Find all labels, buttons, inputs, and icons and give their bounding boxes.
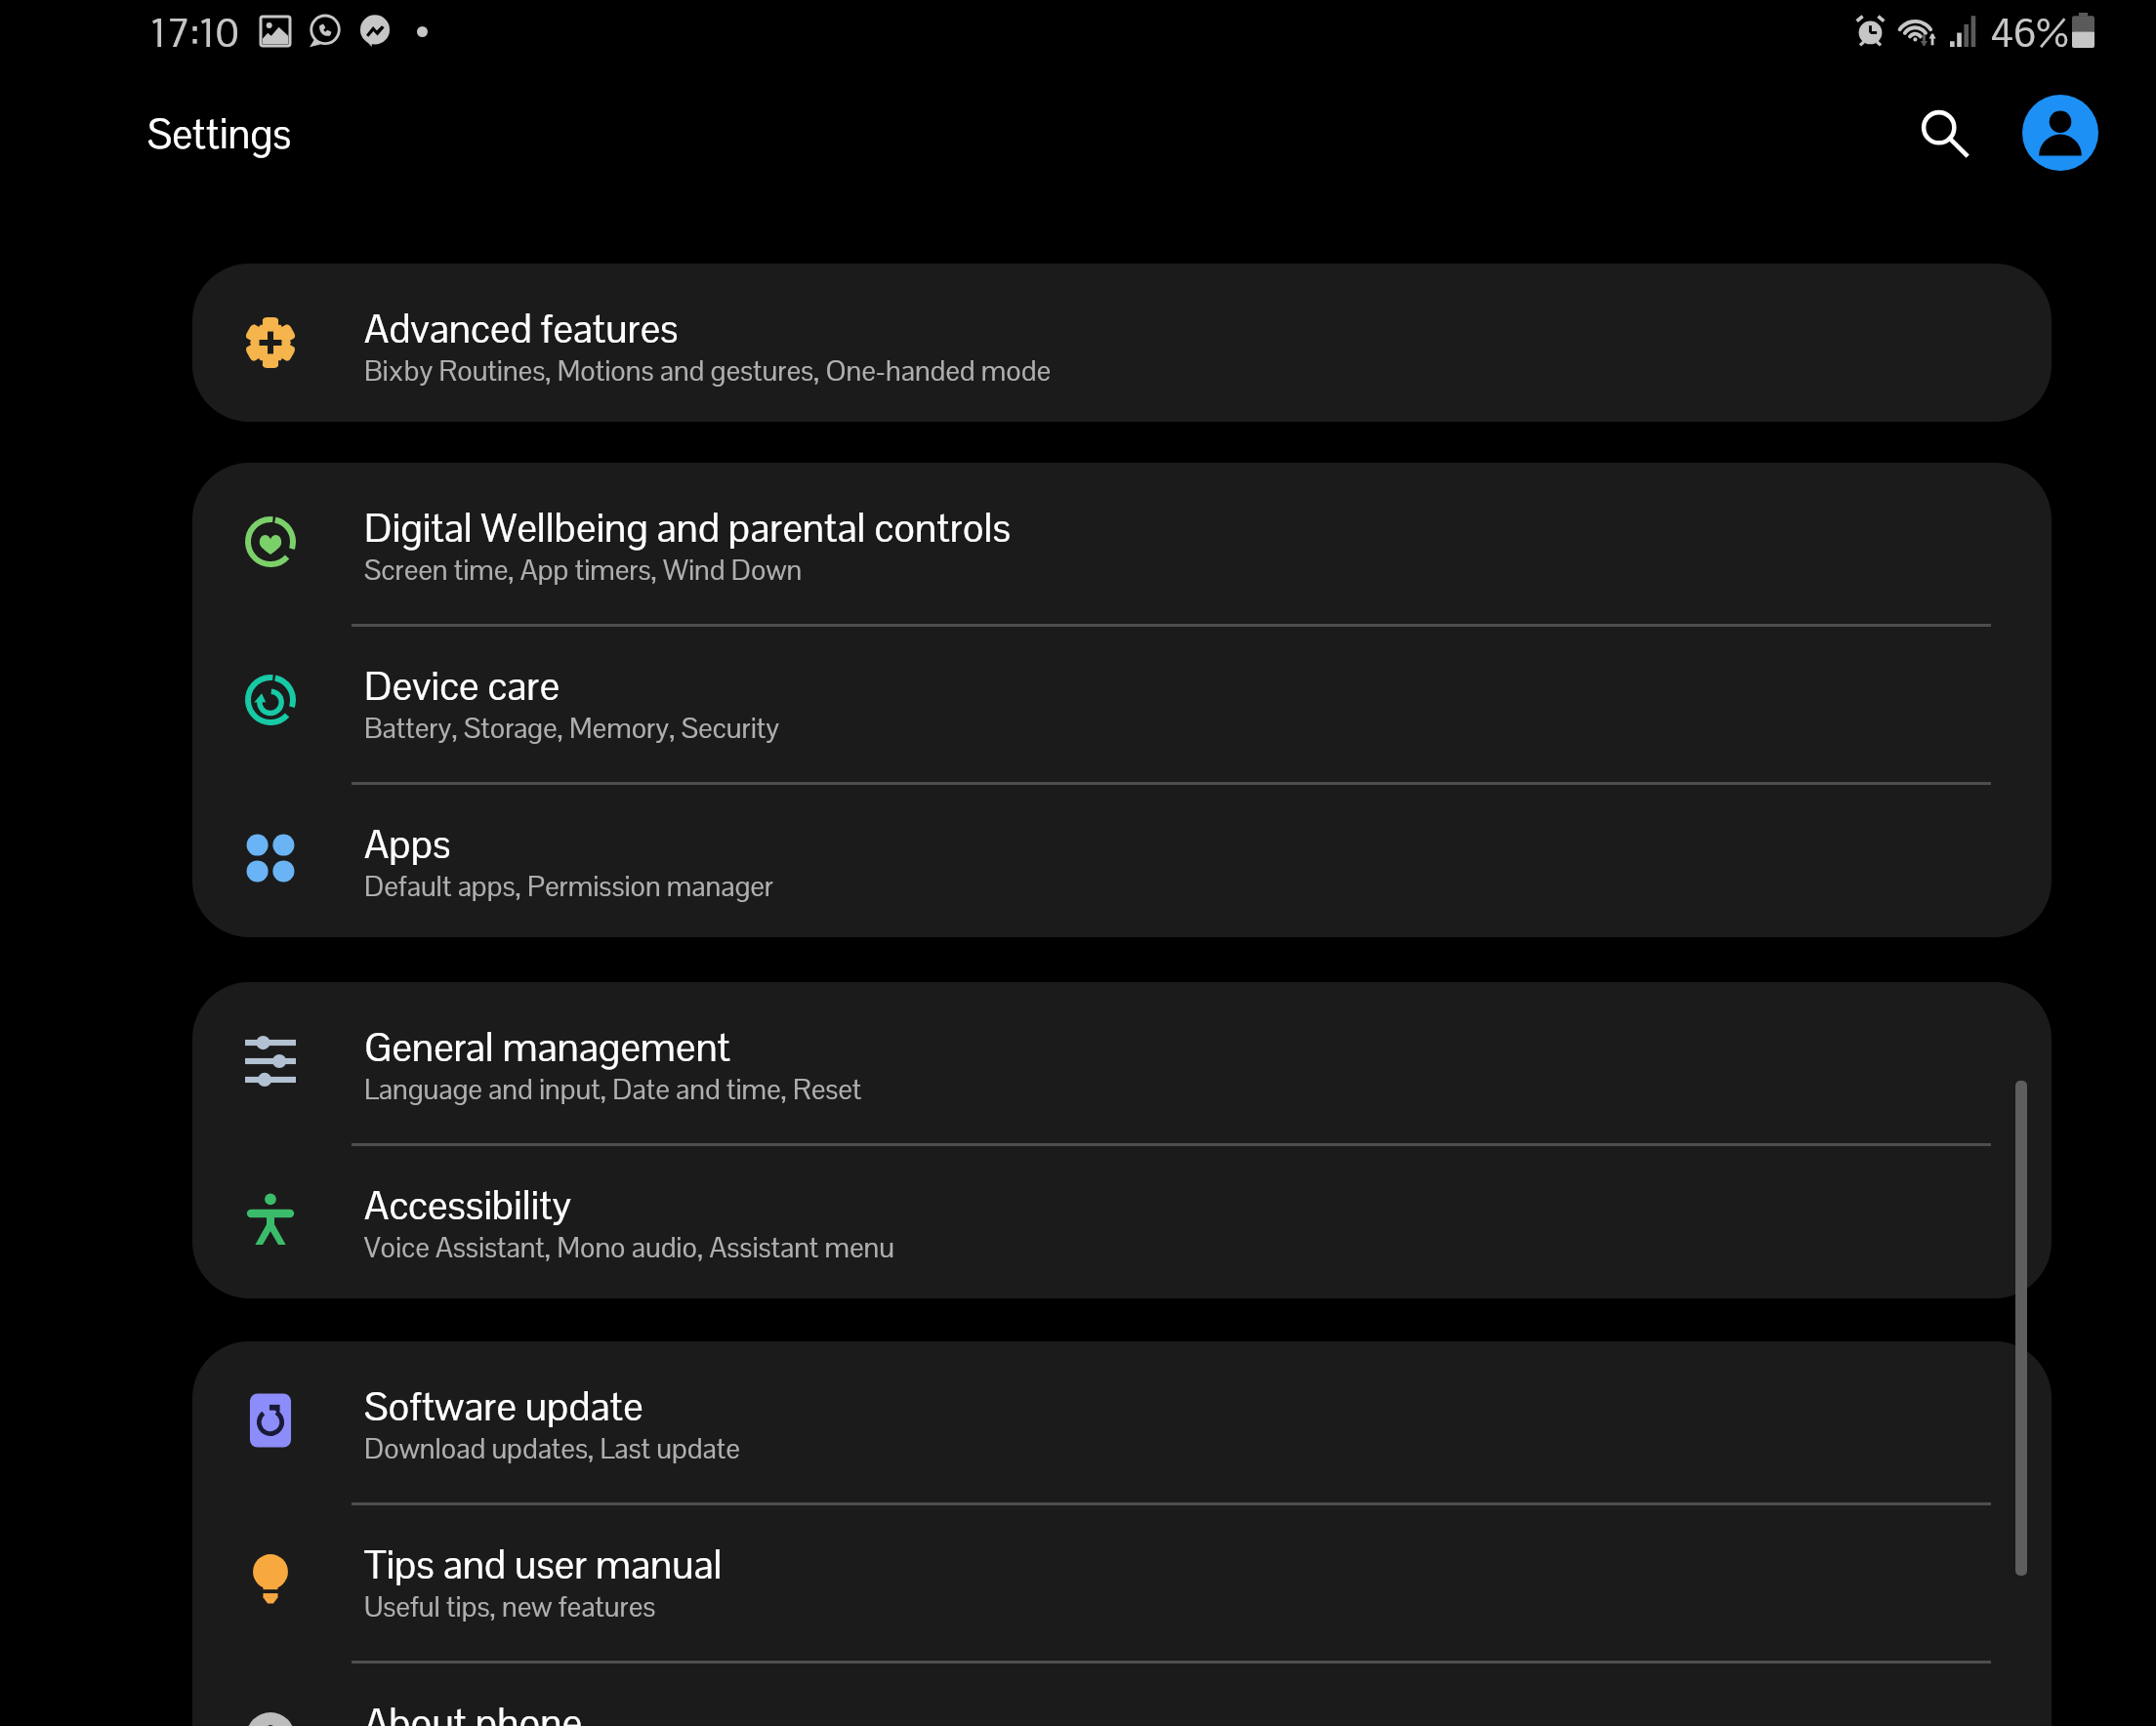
staticText: Software update	[364, 1380, 643, 1432]
button[interactable]: Tips and user manual	[192, 1500, 2052, 1658]
staticText: About phone	[364, 1697, 582, 1726]
button[interactable]: Accessibility	[192, 1140, 2052, 1298]
staticText: Voice Assistant, Mono audio, Assistant m…	[364, 1229, 894, 1265]
button[interactable]: Apps	[192, 779, 2052, 937]
button[interactable]: About phone	[192, 1658, 2052, 1726]
staticText: 17:10	[150, 8, 239, 58]
staticText: Device care	[364, 660, 560, 712]
staticText: Digital Wellbeing and parental controls	[364, 502, 1011, 554]
staticText: Screen time, App timers, Wind Down	[364, 552, 803, 588]
staticText: Accessibility	[364, 1179, 572, 1231]
button[interactable]: Digital Wellbeing and parental controls	[192, 463, 2052, 621]
button[interactable]: Advanced features	[192, 264, 2052, 422]
button[interactable]: Account	[2014, 87, 2106, 179]
staticText: Settings	[147, 107, 291, 160]
staticText: Bixby Routines, Motions and gestures, On…	[364, 352, 1052, 389]
button[interactable]: Software update	[192, 1341, 2052, 1500]
button[interactable]: Search	[1898, 87, 1990, 179]
staticText: Default apps, Permission manager	[364, 868, 774, 904]
button[interactable]: General management	[192, 982, 2052, 1140]
staticText: Download updates, Last update	[364, 1430, 740, 1466]
staticText: Apps	[364, 818, 451, 870]
staticText: Language and input, Date and time, Reset	[364, 1071, 862, 1107]
staticText: Battery, Storage, Memory, Security	[364, 710, 780, 746]
staticText: Advanced features	[364, 303, 679, 354]
staticText: General management	[364, 1021, 731, 1073]
button[interactable]: Device care	[192, 621, 2052, 779]
staticText: Useful tips, new features	[364, 1588, 656, 1624]
staticText: 46%	[1990, 8, 2069, 58]
staticText: Tips and user manual	[364, 1539, 723, 1590]
